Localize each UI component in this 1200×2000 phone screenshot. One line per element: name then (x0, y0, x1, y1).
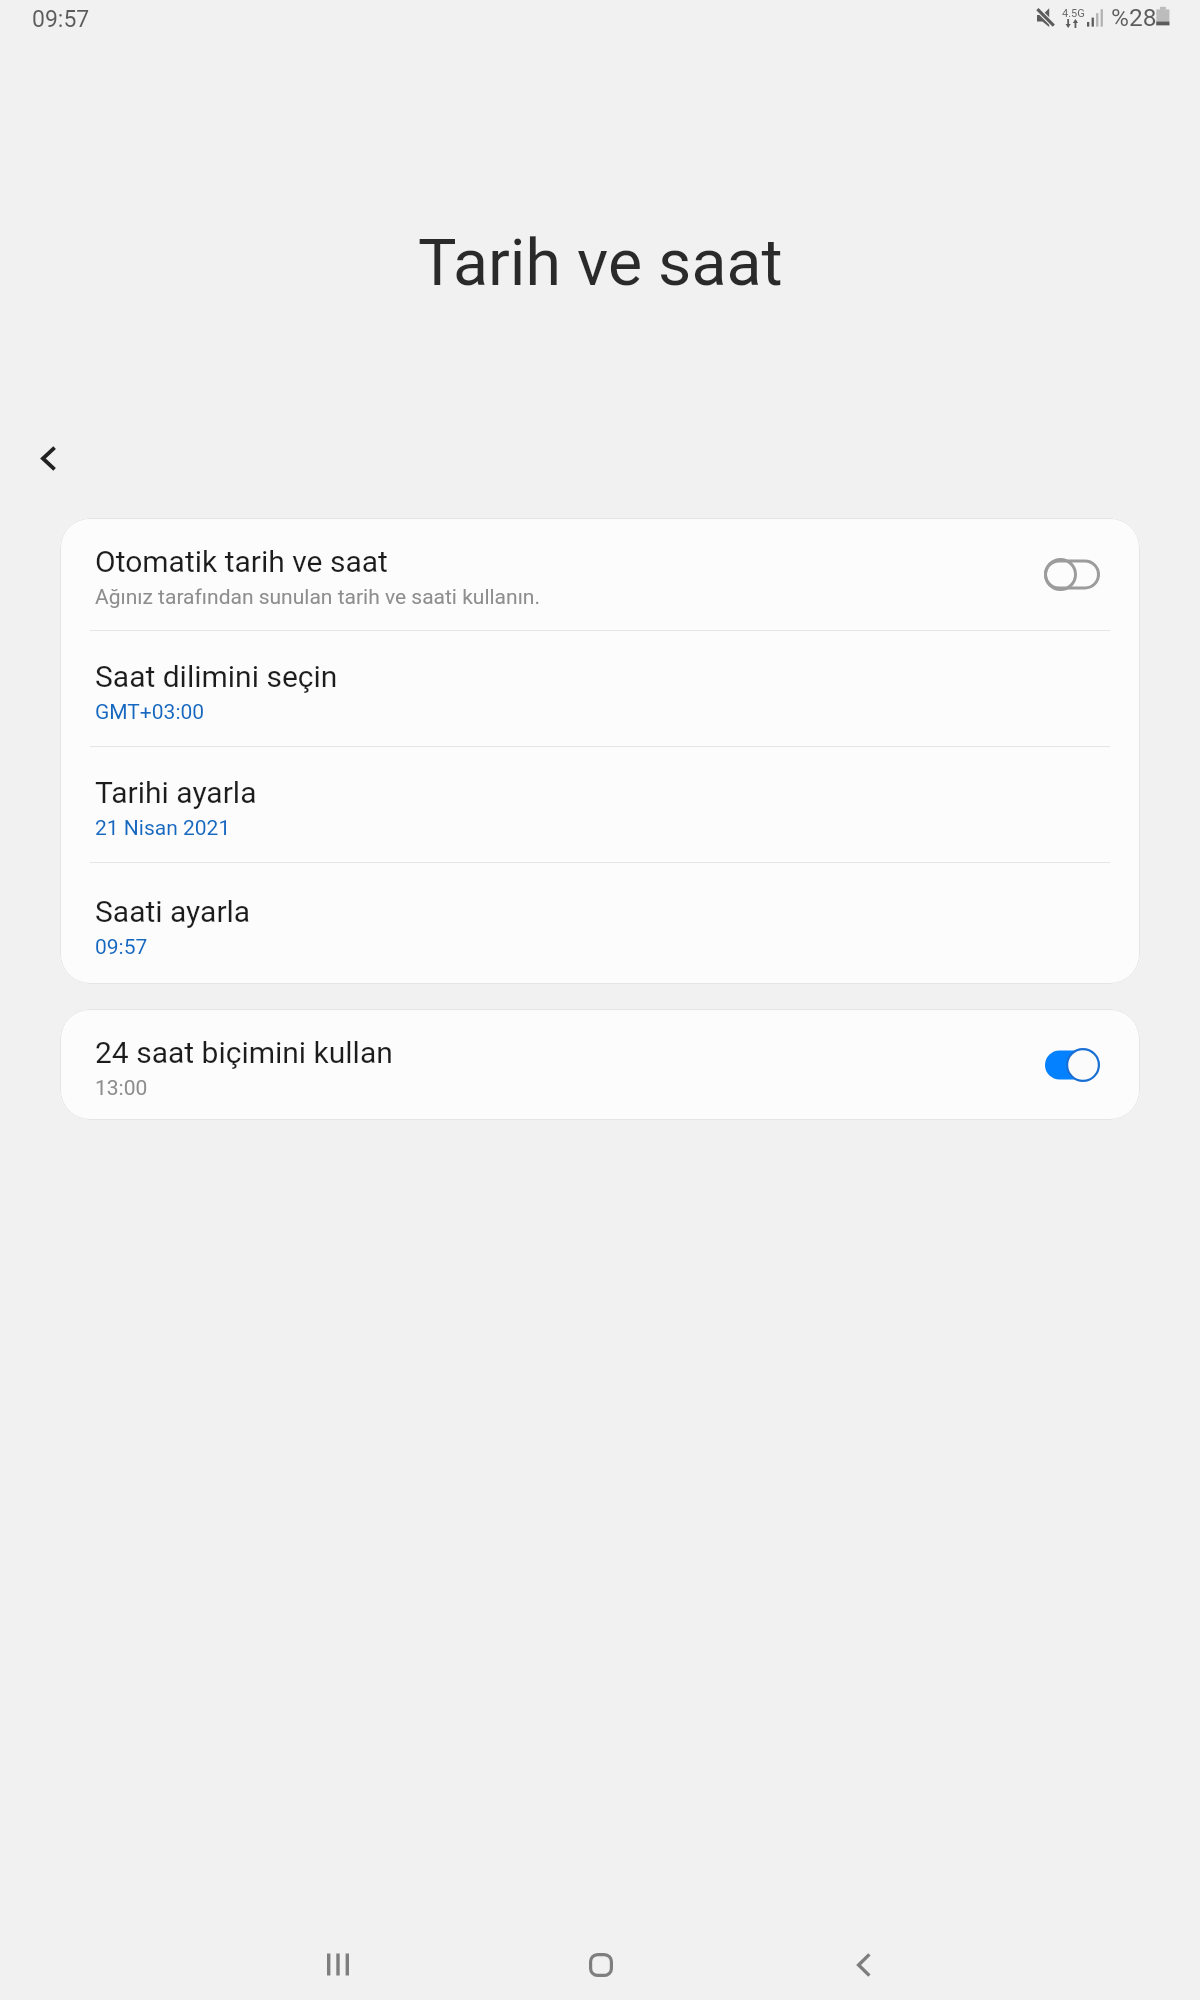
staticText: 21 Nisan 2021 (95, 816, 231, 841)
button[interactable]: Otomatik tarih ve saat (60, 518, 1140, 630)
button[interactable]: Saati ayarla (60, 863, 1140, 984)
button[interactable]: Ana ekran (525, 1905, 677, 2000)
staticText: 24 saat biçimini kullan (95, 1035, 393, 1070)
staticText: 09:57 (32, 6, 90, 33)
button[interactable]: Son uygulamalar (262, 1905, 414, 2000)
button[interactable]: Tarihi ayarla (60, 747, 1140, 862)
staticText: 13:00 (95, 1076, 148, 1101)
staticText: 09:57 (95, 935, 148, 960)
staticText: GMT+03:00 (95, 700, 205, 725)
staticText: %28 (1111, 3, 1157, 32)
staticText: Otomatik tarih ve saat (95, 544, 388, 579)
staticText: 4.5G (1062, 7, 1085, 20)
staticText: Saati ayarla (95, 894, 251, 929)
staticText: Tarih ve saat (418, 225, 783, 301)
staticText: Tarihi ayarla (95, 775, 257, 810)
staticText: Ağınız tarafından sunulan tarih ve saati… (95, 585, 540, 610)
button[interactable]: Saat dilimini seçin (60, 631, 1140, 746)
button[interactable]: Geri (10, 430, 88, 488)
button[interactable]: Otomatik tarih ve saat: kapalı (1044, 546, 1100, 602)
staticText: Saat dilimini seçin (95, 659, 338, 694)
button[interactable]: 24 saat biçimini kullan (60, 1009, 1140, 1120)
button[interactable]: Geri (788, 1905, 940, 2000)
button[interactable]: 24 saat biçimini kullan: açık (1044, 1037, 1100, 1093)
